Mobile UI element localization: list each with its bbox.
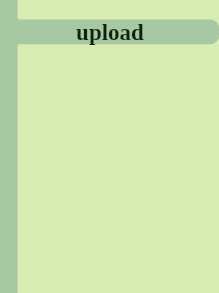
staticText: upload [76,20,144,45]
button[interactable]: Navigation rail [0,0,18,293]
button[interactable]: upload [0,19,219,44]
